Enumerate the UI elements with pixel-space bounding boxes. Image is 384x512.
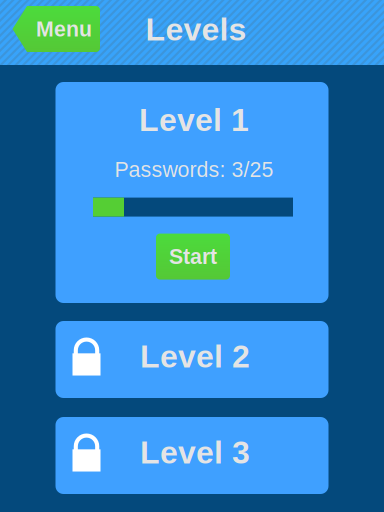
- staticText: Level 1: [139, 102, 249, 138]
- staticText: Passwords: 3/25: [114, 158, 273, 182]
- button[interactable]: Level 2: [55, 321, 328, 398]
- button[interactable]: Start: [156, 234, 230, 280]
- staticText: Start: [169, 245, 217, 268]
- staticText: Level 2: [140, 339, 250, 374]
- staticText: Level 3: [140, 435, 250, 470]
- button[interactable]: Menu: [12, 6, 100, 52]
- staticText: Menu: [36, 17, 92, 41]
- button[interactable]: Level 3: [55, 417, 328, 494]
- staticText: Levels: [145, 12, 246, 47]
